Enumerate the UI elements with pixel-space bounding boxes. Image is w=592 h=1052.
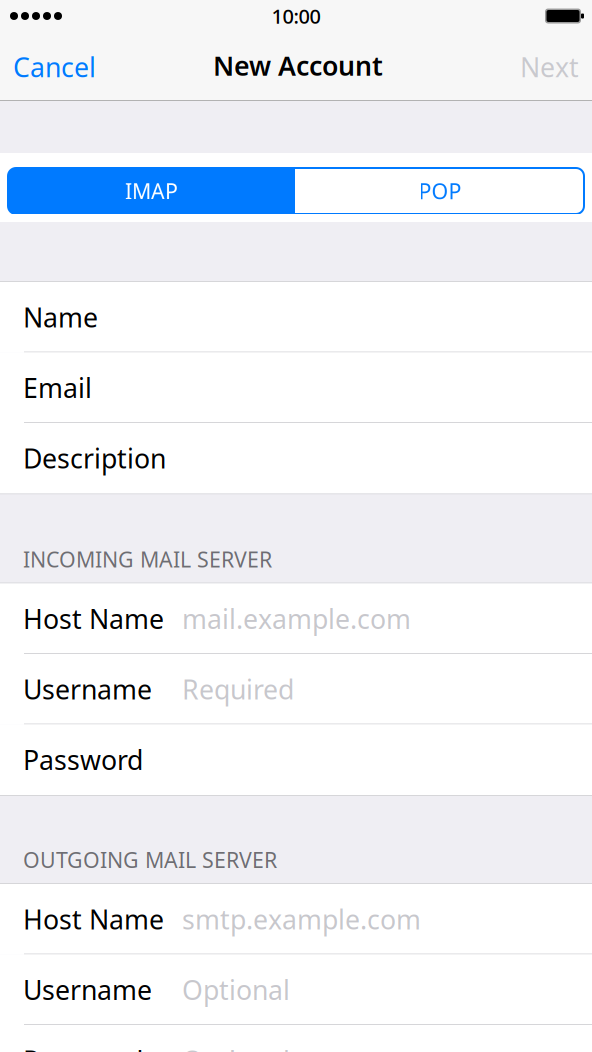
button[interactable]: Host Name	[0, 884, 592, 954]
staticText: Password	[23, 1042, 143, 1052]
button[interactable]: POP	[296, 168, 584, 214]
staticText: OUTGOING MAIL SERVER	[23, 846, 277, 874]
staticText: Host Name	[23, 601, 164, 636]
staticText: Description	[23, 440, 166, 476]
button[interactable]: IMAP	[8, 168, 295, 214]
staticText: mail.example.com	[182, 601, 411, 636]
staticText: Cancel	[13, 49, 96, 85]
button[interactable]: Password	[0, 724, 592, 795]
staticText: smtp.example.com	[182, 901, 421, 937]
button[interactable]: Username	[0, 954, 592, 1025]
button[interactable]: Email	[0, 352, 592, 423]
staticText: Name	[23, 299, 98, 335]
button[interactable]: Next	[508, 36, 592, 100]
staticText: Optional	[182, 1042, 290, 1052]
button[interactable]: Name	[0, 282, 592, 352]
staticText: Optional	[182, 972, 290, 1007]
button[interactable]: Description	[0, 423, 592, 493]
staticText: Password	[23, 742, 143, 777]
button[interactable]: Password	[0, 1025, 592, 1052]
button[interactable]: Username	[0, 654, 592, 724]
staticText: Username	[23, 972, 152, 1007]
staticText: New Account	[213, 48, 383, 83]
button[interactable]: Cancel	[0, 36, 108, 100]
staticText: Username	[23, 671, 152, 707]
staticText: Email	[23, 370, 92, 405]
staticText: Required	[182, 671, 294, 707]
staticText: 10:00	[271, 3, 320, 29]
staticText: Next	[520, 49, 579, 85]
button[interactable]: Host Name	[0, 583, 592, 654]
staticText: Host Name	[23, 901, 164, 937]
staticText: IMAP	[125, 177, 178, 205]
staticText: INCOMING MAIL SERVER	[23, 545, 272, 573]
staticText: POP	[418, 177, 461, 205]
